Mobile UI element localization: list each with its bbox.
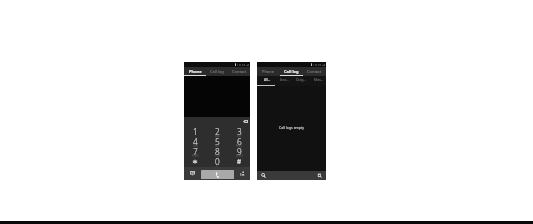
staticText: 6 [237,136,242,146]
staticText: 0 [215,156,220,166]
button[interactable]: Dialpad [313,171,326,180]
staticText: TUV [215,154,220,158]
button[interactable]: Phone [257,67,280,76]
button[interactable]: Search [257,171,270,180]
button[interactable] [228,157,250,167]
button[interactable]: Messages [184,167,201,180]
button[interactable]: Call [201,170,234,179]
button[interactable]: 0 [206,157,228,167]
button[interactable]: Contact [228,67,250,76]
staticText: Miss… [314,78,324,82]
staticText: Contact [307,69,322,74]
button[interactable]: 8 [206,147,228,157]
button[interactable]: All… [257,76,275,86]
staticText: Outg… [296,78,307,82]
button[interactable]: Contact [303,67,326,76]
staticText: Contact [232,69,247,74]
button[interactable]: Miss… [309,76,326,86]
button[interactable] [184,157,206,167]
staticText: Phone [189,69,202,74]
staticText: 4 [193,136,198,146]
button[interactable]: 9 [228,147,250,157]
button[interactable]: 2 [206,127,228,137]
staticText: 2 [215,126,220,136]
staticText: 3 [237,126,242,136]
button[interactable]: Add contact [234,167,250,180]
button[interactable]: 1 [184,127,206,137]
staticText: WXYZ [236,154,243,158]
button[interactable]: 5 [206,137,228,147]
button[interactable]: Inco… [275,76,292,86]
button[interactable]: 4 [184,137,206,147]
button[interactable]: Call log [206,67,228,76]
staticText: Call log [284,69,299,74]
staticText: 7 [193,146,198,156]
staticText: 9 [237,146,242,156]
staticText: Call log [210,69,224,74]
staticText: MNO [236,144,243,148]
staticText: GHI [193,144,198,148]
button[interactable]: Call log [280,67,303,76]
staticText: Inco… [280,78,290,82]
staticText: All… [264,78,271,82]
staticText: 1 [193,126,198,136]
staticText: 8 [215,146,220,156]
staticText: ABC [215,134,220,138]
staticText: PQRS [192,154,199,158]
staticText: Call logs empty [279,125,305,130]
button[interactable]: 6 [228,137,250,147]
button[interactable]: Outg… [292,76,309,86]
staticText: Phone [262,69,275,74]
button[interactable]: 3 [228,127,250,137]
staticText: 5 [215,136,220,146]
button[interactable]: Backspace [242,118,249,124]
staticText: JKL [215,144,219,148]
button[interactable]: 7 [184,147,206,157]
button[interactable]: Phone [184,67,206,76]
staticText: DEF [237,134,242,138]
staticText: + [216,164,218,168]
